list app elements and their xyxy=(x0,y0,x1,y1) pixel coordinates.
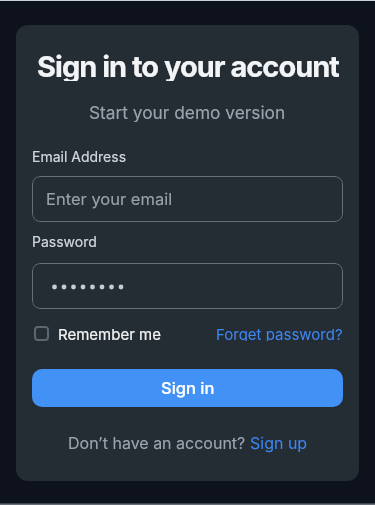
button[interactable] xyxy=(32,263,343,309)
button[interactable]: Forget password? xyxy=(216,325,343,341)
staticText: Enter your email xyxy=(46,189,173,209)
button[interactable]: Remember me xyxy=(32,325,161,341)
staticText: Sign in xyxy=(161,378,215,398)
staticText: Forget password? xyxy=(216,325,343,341)
staticText: Sign in to your account xyxy=(37,49,339,81)
staticText: Password xyxy=(32,233,97,250)
staticText: Sign up xyxy=(250,433,308,452)
button[interactable]: Enter your email xyxy=(32,176,343,222)
staticText: Remember me xyxy=(58,325,161,341)
button[interactable]: Sign in xyxy=(32,369,343,407)
staticText: Start your demo version xyxy=(89,102,286,122)
staticText: Don’t have an account? xyxy=(68,433,250,452)
button[interactable]: Sign up xyxy=(250,433,308,452)
staticText: Email Address xyxy=(32,148,127,165)
